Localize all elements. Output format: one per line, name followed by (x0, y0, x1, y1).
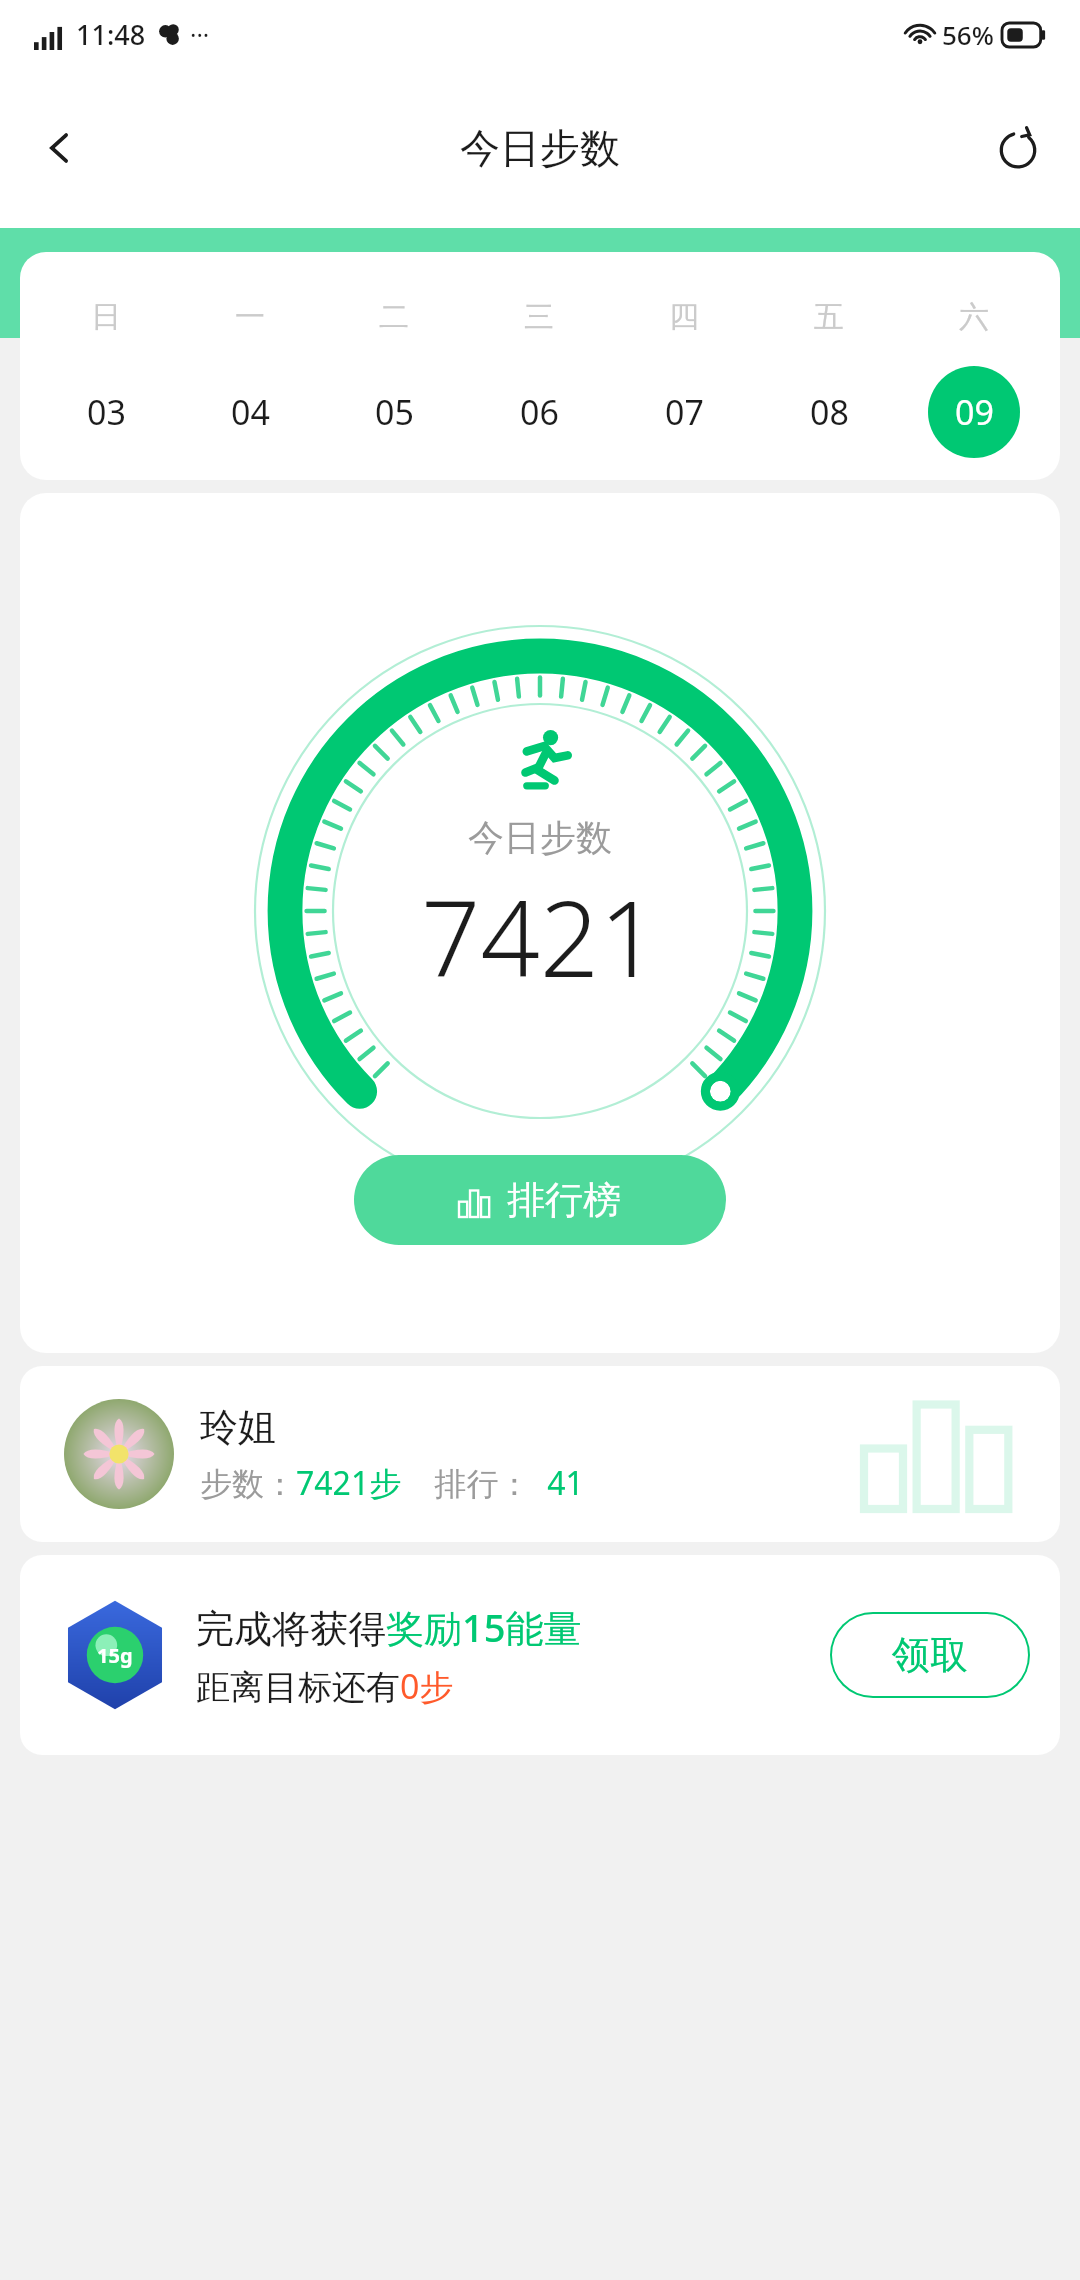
staticText: 09 (955, 389, 994, 435)
staticText: 03 (87, 389, 126, 435)
staticText: 日 (91, 298, 121, 336)
staticText: 15g (97, 1642, 133, 1669)
staticText: 06 (520, 389, 559, 435)
button[interactable]: 三 (466, 252, 611, 480)
button[interactable]: Share (978, 108, 1058, 188)
staticText: 领取 (892, 1631, 968, 1679)
button[interactable]: 领取 (830, 1612, 1030, 1698)
button[interactable]: 日 (34, 252, 178, 480)
staticText: 三 (524, 298, 554, 336)
staticText: 距离目标还有0步 (196, 1663, 454, 1709)
button[interactable]: 六 (901, 252, 1046, 480)
staticText: 六 (959, 298, 989, 336)
button[interactable]: Back (20, 108, 100, 188)
staticText: 今日步数 (468, 815, 612, 860)
button[interactable]: 玲姐 (20, 1366, 1060, 1542)
button[interactable]: 四 (611, 252, 756, 480)
staticText: 四 (669, 298, 699, 336)
button[interactable]: 一 (178, 252, 322, 480)
staticText: 二 (379, 298, 409, 336)
staticText: 完成将获得奖励15能量 (196, 1601, 582, 1653)
staticText: 今日步数 (460, 123, 620, 173)
button[interactable]: 排行榜 (354, 1155, 726, 1245)
staticText: 7421 (421, 866, 659, 1008)
staticText: 05 (375, 389, 414, 435)
staticText: 04 (231, 389, 270, 435)
staticText: 一 (235, 298, 265, 336)
staticText: 步数：7421步 排行： 41 (200, 1461, 584, 1505)
staticText: 11:48 (76, 16, 146, 53)
button[interactable]: 五 (756, 252, 901, 480)
staticText: 08 (810, 389, 849, 435)
button[interactable]: 二 (322, 252, 466, 480)
staticText: 排行榜 (507, 1176, 621, 1224)
staticText: 玲姐 (200, 1403, 276, 1451)
staticText: 56% (942, 17, 994, 52)
staticText: 07 (665, 389, 704, 435)
staticText: ··· (190, 18, 210, 51)
staticText: 五 (814, 298, 844, 336)
